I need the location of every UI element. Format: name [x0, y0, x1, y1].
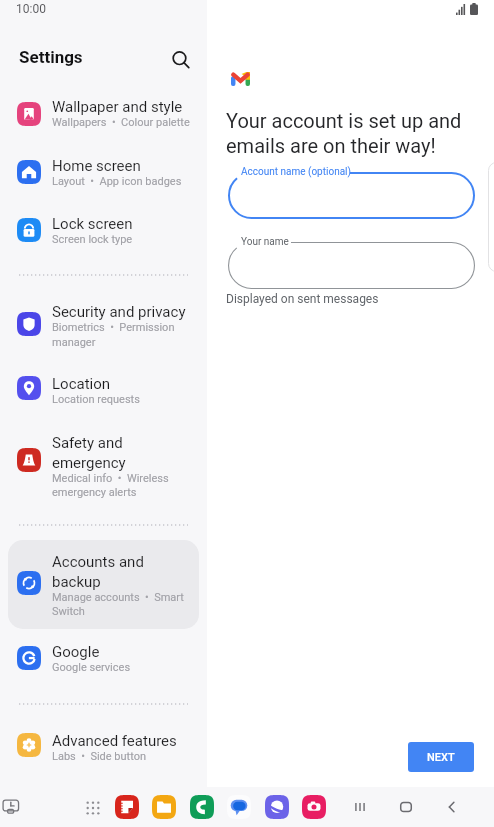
staticText: Medical info • Wireless	[52, 472, 169, 485]
button[interactable]: Phone	[190, 795, 214, 819]
button[interactable]: Search	[167, 46, 195, 74]
staticText: manager	[52, 336, 96, 349]
staticText: 10:00	[16, 2, 46, 16]
button[interactable]	[8, 540, 199, 629]
staticText: Google services	[52, 661, 131, 674]
button[interactable]	[8, 368, 200, 416]
staticText: Lock screen	[52, 215, 133, 233]
button[interactable]	[8, 546, 200, 629]
staticText: Your name	[241, 236, 289, 248]
staticText: Home screen	[52, 157, 141, 175]
staticText: Your account is set up and	[226, 109, 462, 132]
button[interactable]: NEXT	[408, 742, 474, 772]
button[interactable]	[8, 208, 200, 256]
button[interactable]: All apps	[86, 801, 100, 815]
button[interactable]	[8, 296, 200, 359]
staticText: Biometrics • Permission	[52, 321, 175, 334]
staticText: emergency	[52, 454, 126, 472]
button[interactable]	[8, 150, 200, 198]
staticText: Location	[52, 375, 111, 393]
staticText: Labs • Side button	[52, 750, 147, 763]
staticText: Account name (optional)	[241, 166, 352, 178]
button[interactable]: DeX mode	[2, 798, 20, 816]
staticText: Accounts and	[52, 553, 144, 571]
button[interactable]: Home	[394, 795, 418, 819]
button[interactable]: Recents	[348, 795, 372, 819]
staticText: Manage accounts • Smart	[52, 591, 184, 604]
staticText: Screen lock type	[52, 233, 133, 246]
staticText: emails are on their way!	[226, 134, 436, 157]
staticText: NEXT	[427, 751, 455, 764]
staticText: Wallpapers • Colour palette	[52, 116, 190, 129]
staticText: Advanced features	[52, 732, 177, 750]
button[interactable]	[8, 427, 200, 510]
staticText: Google	[52, 643, 100, 661]
button[interactable]	[8, 636, 200, 684]
button[interactable]: Messages	[227, 795, 251, 819]
staticText: Switch	[52, 605, 85, 618]
staticText: Wallpaper and style	[52, 98, 183, 116]
staticText: Settings	[19, 47, 83, 67]
button[interactable]: Samsung Notes	[115, 795, 139, 819]
button[interactable]	[8, 725, 200, 773]
button[interactable]: Internet	[265, 795, 289, 819]
button[interactable]	[228, 242, 475, 289]
button[interactable]: My Files	[152, 795, 176, 819]
button[interactable]	[228, 172, 475, 219]
staticText: Displayed on sent messages	[226, 292, 379, 306]
staticText: Safety and	[52, 434, 123, 452]
button[interactable]: Camera	[302, 795, 326, 819]
staticText: Location requests	[52, 393, 140, 406]
staticText: backup	[52, 573, 101, 591]
staticText: Layout • App icon badges	[52, 175, 182, 188]
staticText: emergency alerts	[52, 486, 137, 499]
button[interactable]: Back	[440, 795, 464, 819]
button[interactable]	[8, 91, 200, 139]
staticText: Security and privacy	[52, 303, 186, 321]
